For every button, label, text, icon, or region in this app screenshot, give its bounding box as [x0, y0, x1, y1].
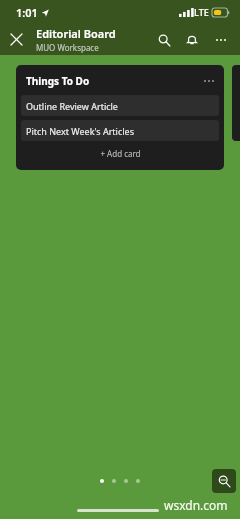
button[interactable]: Outline Review Article	[21, 95, 219, 116]
staticText: MUO Workspace	[36, 42, 99, 53]
button[interactable]: Zoom out	[212, 469, 236, 493]
staticText: Outline Review Article	[26, 100, 118, 112]
button[interactable]: Things To Do	[21, 70, 219, 92]
button[interactable]: Next list	[232, 65, 240, 141]
staticText: Editorial Board	[36, 26, 116, 41]
staticText: Things To Do	[26, 74, 204, 88]
staticText: 1:01	[16, 5, 38, 20]
button[interactable]: Notifications	[178, 26, 206, 54]
button[interactable]: Search	[150, 26, 178, 54]
button[interactable]: More options	[206, 25, 236, 55]
button[interactable]: Close	[0, 24, 32, 55]
staticText: Pitch Next Week's Articles	[26, 125, 134, 137]
staticText: LTE	[194, 6, 209, 18]
button[interactable]: Pitch Next Week's Articles	[21, 120, 219, 141]
button[interactable]: + Add card	[21, 141, 219, 165]
staticText: wsxdn.com	[164, 497, 228, 513]
staticText: + Add card	[100, 148, 141, 159]
